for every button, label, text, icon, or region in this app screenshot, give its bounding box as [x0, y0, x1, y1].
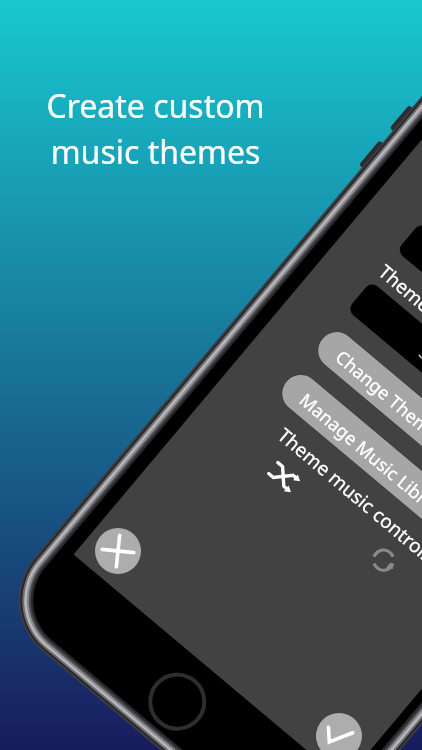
- staticText: Change Theme Music: [330, 345, 422, 481]
- button[interactable]: Shuffle: [260, 453, 308, 500]
- button[interactable]: Confirm: [316, 713, 362, 750]
- staticText: Theme music controls: [272, 422, 422, 569]
- button[interactable]: Repeat: [364, 540, 403, 580]
- staticText: Theme Name: [373, 259, 422, 356]
- button[interactable]: Change Theme Music: [311, 324, 422, 513]
- staticText: Create custom music themes: [23, 84, 288, 188]
- staticText: Song name: [351, 287, 422, 474]
- button[interactable]: Add theme: [95, 528, 141, 574]
- button[interactable]: Manage Music Library: [275, 367, 422, 556]
- button[interactable]: Song name: [347, 281, 422, 478]
- button[interactable]: Theme 1: [396, 222, 422, 419]
- staticText: Theme 1: [400, 228, 422, 415]
- staticText: Manage Music Library: [294, 388, 422, 527]
